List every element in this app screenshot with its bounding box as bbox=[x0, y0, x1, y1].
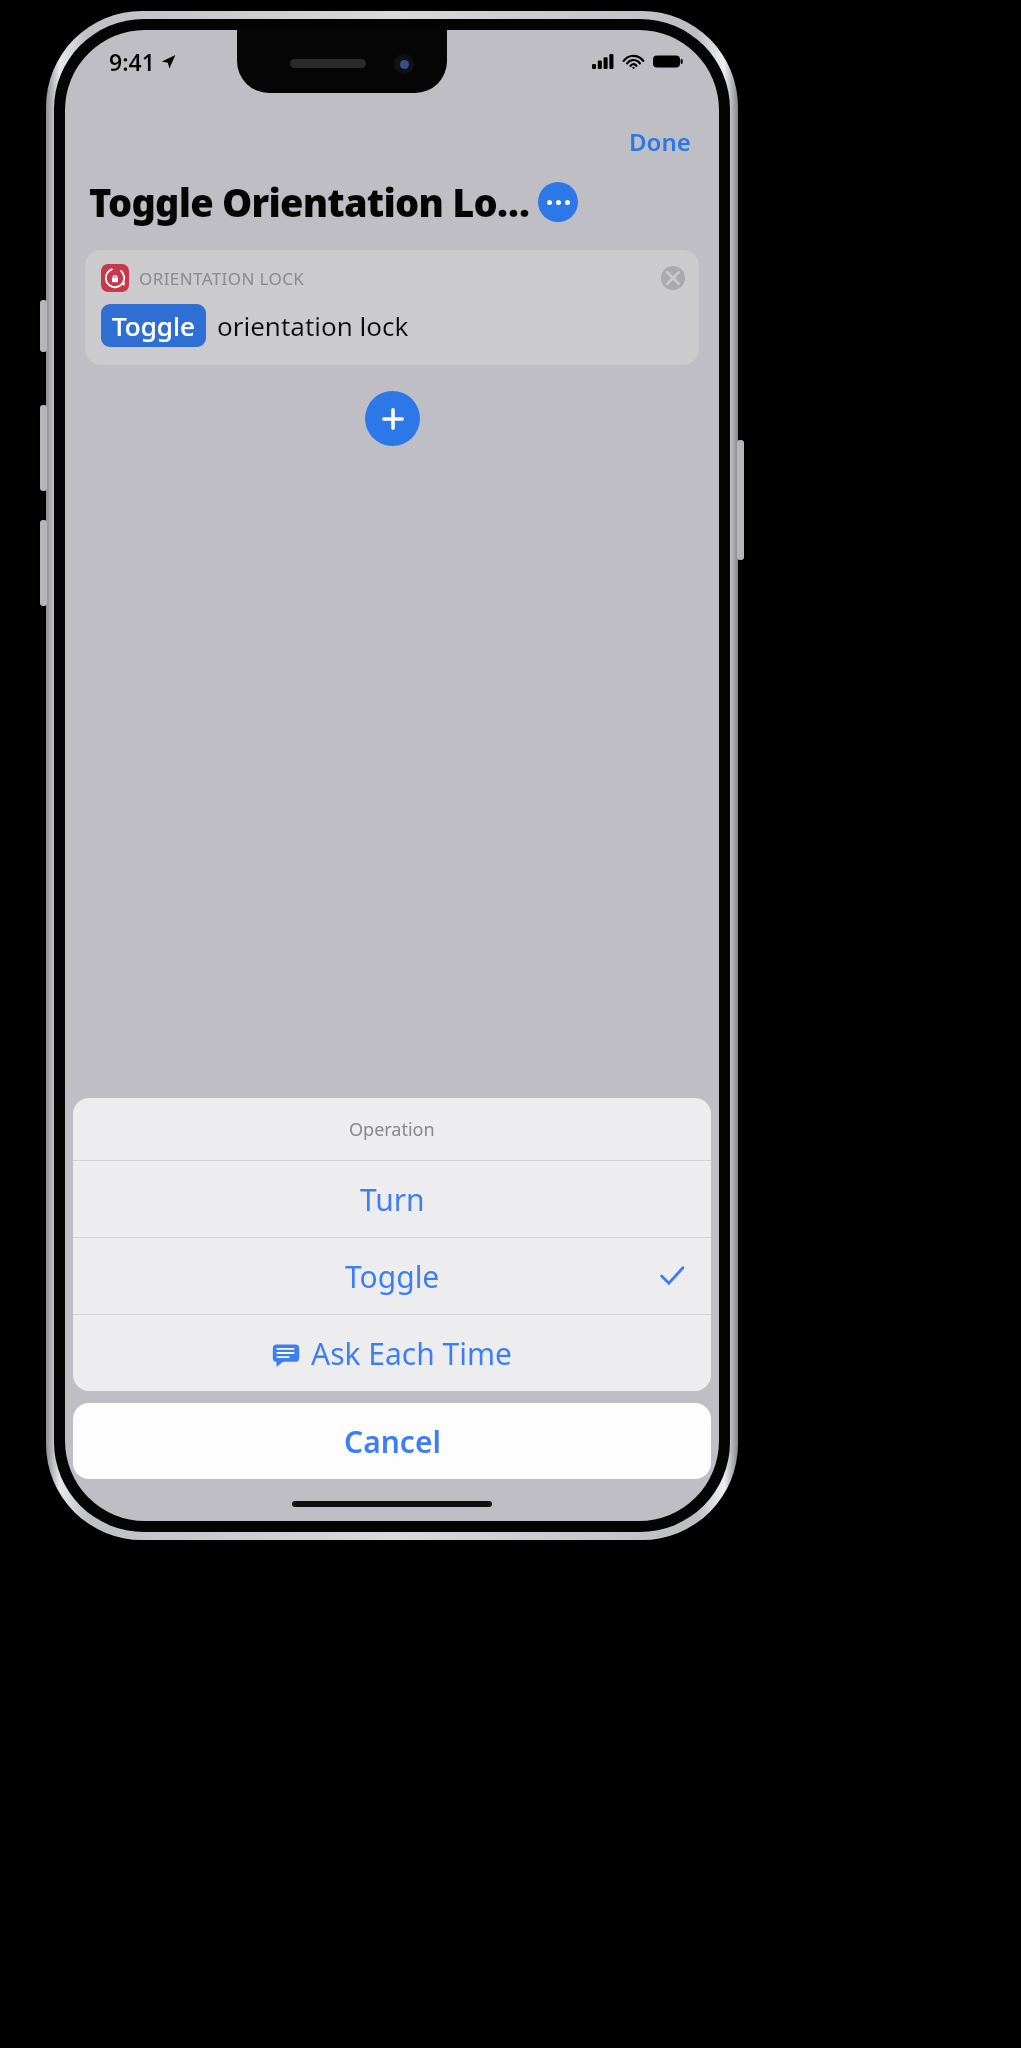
staticText: Operation bbox=[349, 1117, 435, 1142]
button[interactable]: Remove action bbox=[661, 266, 685, 290]
button[interactable]: Ask Each Time bbox=[73, 1315, 711, 1391]
staticText: Toggle Orientation Lo… bbox=[89, 176, 530, 228]
staticText: 9:41 bbox=[109, 46, 155, 77]
button[interactable]: Turn bbox=[73, 1161, 711, 1237]
staticText: orientation lock bbox=[217, 308, 409, 343]
staticText: Toggle bbox=[345, 1256, 440, 1297]
button[interactable]: More options bbox=[538, 182, 578, 222]
staticText: ORIENTATION LOCK bbox=[139, 267, 305, 290]
button[interactable]: Cancel bbox=[73, 1403, 711, 1479]
button[interactable]: ORIENTATION LOCK bbox=[85, 250, 699, 365]
staticText: Ask Each Time bbox=[311, 1333, 512, 1374]
staticText: Turn bbox=[360, 1179, 425, 1220]
staticText: Done bbox=[629, 125, 691, 158]
staticText: Toggle bbox=[112, 308, 195, 343]
button[interactable]: Toggle bbox=[73, 1238, 711, 1314]
button[interactable]: Done bbox=[623, 121, 697, 162]
button[interactable]: Add action bbox=[365, 391, 420, 446]
button[interactable]: Toggle bbox=[101, 304, 206, 347]
staticText: Cancel bbox=[344, 1421, 441, 1462]
